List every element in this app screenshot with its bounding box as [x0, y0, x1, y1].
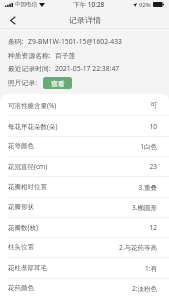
staticText: 可 [150, 101, 157, 109]
button[interactable]: 可溶性糖含量(%) [0, 95, 169, 115]
staticText: 2021-05-17 22:38:47 [55, 64, 120, 73]
staticText: 最近记录时间: [8, 64, 51, 73]
button[interactable]: 查看 [43, 77, 72, 89]
staticText: 下午 10:28 [73, 0, 105, 9]
button[interactable]: 花萼颜色 [0, 136, 169, 156]
staticText: 1白色 [140, 142, 157, 151]
staticText: 查看 [51, 79, 65, 88]
staticText: 3.重叠 [138, 183, 157, 192]
staticText: 花药颜色 [8, 284, 34, 292]
staticText: 10 [149, 122, 157, 131]
staticText: 花瓣形状 [8, 203, 34, 211]
staticText: 照片记录: [8, 78, 38, 87]
staticText: 每花序花朵数(朵) [8, 122, 58, 131]
staticText: 2:淡粉色 [132, 284, 157, 293]
staticText: 柱头位置 [8, 243, 34, 251]
staticText: 92% [139, 1, 151, 9]
button[interactable]: 花冠直径(cm) [0, 156, 169, 176]
staticText: Z9-BM1W-1501-15@1602-433 [28, 37, 122, 46]
button[interactable]: 花瓣相对位置 [0, 177, 169, 197]
staticText: 百子莲 [55, 51, 76, 60]
staticText: 1:有 [145, 264, 157, 273]
button[interactable]: 花药颜色 [0, 278, 169, 298]
button[interactable]: Back [0, 8, 24, 32]
staticText: 23 [149, 162, 157, 171]
staticText: 记录详情 [69, 15, 101, 25]
staticText: 可溶性糖含量(%) [8, 101, 57, 110]
button[interactable]: 花瓣数(枚) [0, 217, 169, 237]
staticText: 花冠直径(cm) [8, 162, 48, 171]
staticText: 条码: [8, 37, 24, 46]
staticText: 花瓣相对位置 [8, 183, 47, 191]
staticText: 中国电信 [15, 1, 37, 8]
staticText: 12 [149, 223, 157, 232]
button[interactable]: 柱头位置 [0, 237, 169, 257]
button[interactable]: 每花序花朵数(朵) [0, 116, 169, 136]
staticText: 2.与花药等高 [119, 243, 157, 252]
button[interactable]: 花瓣形状 [0, 197, 169, 217]
button[interactable]: 花柱基部茸毛 [0, 258, 169, 278]
staticText: 花瓣数(枚) [8, 223, 38, 232]
staticText: 花萼颜色 [8, 142, 34, 150]
staticText: 花柱基部茸毛 [8, 264, 47, 272]
staticText: 种质资源名称: [8, 51, 51, 60]
staticText: 3.椭圆形 [132, 203, 157, 212]
